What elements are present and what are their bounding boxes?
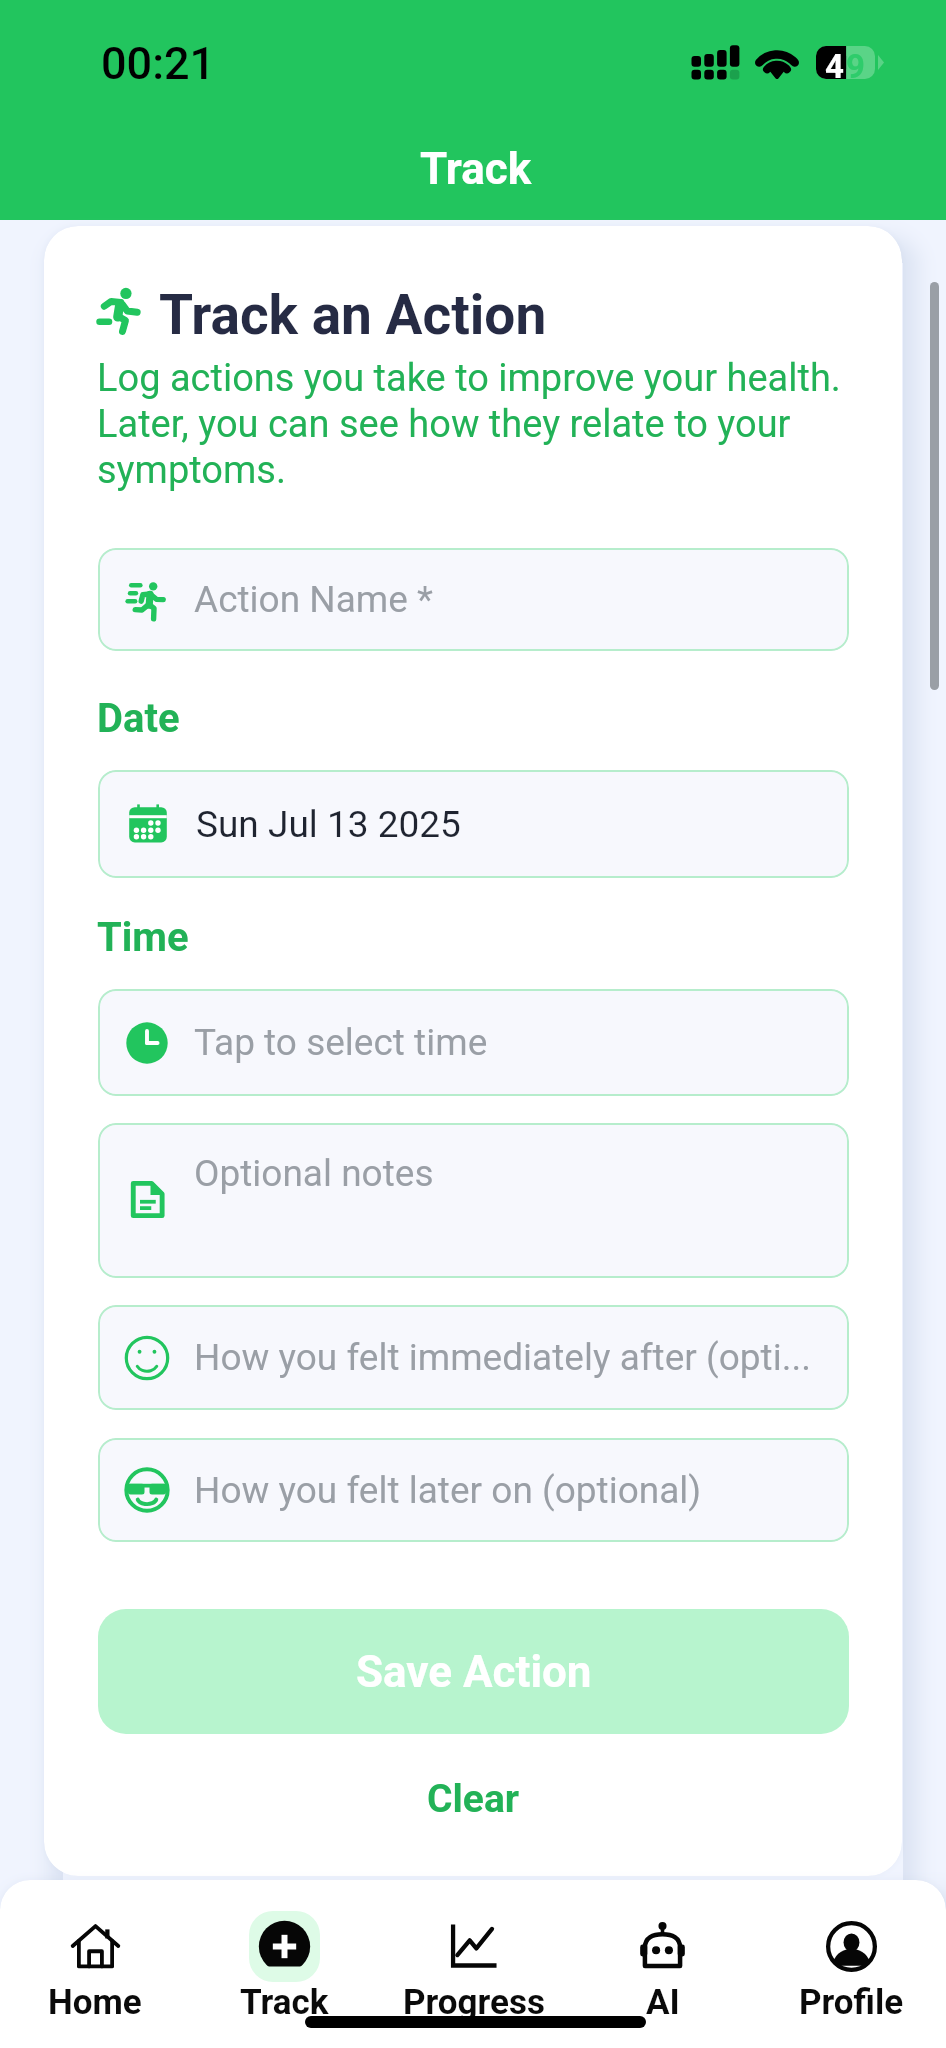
staticText: Tap to select time [194, 1021, 488, 1064]
button[interactable]: Action Name * [98, 548, 849, 651]
staticText: Optional notes [194, 1152, 434, 1195]
button[interactable]: How you felt immediately after (opti... [98, 1305, 849, 1410]
staticText: 00:21 [101, 37, 216, 90]
staticText: Action Name * [194, 578, 434, 621]
staticText: 4 [825, 47, 844, 86]
staticText: Home [48, 1982, 142, 2023]
staticText: Progress [403, 1982, 545, 2023]
staticText: Track [420, 143, 532, 195]
staticText: Save Action [356, 1646, 592, 1698]
button[interactable]: Sun Jul 13 2025 [98, 770, 849, 878]
staticText: Sun Jul 13 2025 [196, 803, 461, 846]
staticText: How you felt later on (optional) [194, 1469, 702, 1512]
button[interactable]: Track [190, 1880, 379, 2023]
staticText: 9 [846, 47, 865, 86]
staticText: How you felt immediately after (opti... [194, 1336, 811, 1379]
button[interactable]: Save Action [98, 1609, 849, 1734]
staticText: Time [97, 914, 189, 961]
button[interactable]: Profile [757, 1880, 946, 2023]
button[interactable]: Progress [379, 1880, 568, 2023]
staticText: Date [97, 695, 180, 742]
staticText: Clear [427, 1776, 520, 1822]
staticText: AI [646, 1982, 680, 2023]
button[interactable]: Optional notes [98, 1123, 849, 1278]
staticText: Track an Action [159, 283, 547, 347]
staticText: Profile [799, 1982, 904, 2023]
button[interactable]: Home [0, 1880, 190, 2023]
staticText: Log actions you take to improve your hea… [97, 356, 859, 493]
button[interactable]: Clear [98, 1756, 849, 1842]
button[interactable]: Tap to select time [98, 989, 849, 1096]
button[interactable]: AI assistant [568, 1880, 757, 2023]
staticText: Track [240, 1982, 329, 2023]
button[interactable]: How you felt later on (optional) [98, 1438, 849, 1542]
